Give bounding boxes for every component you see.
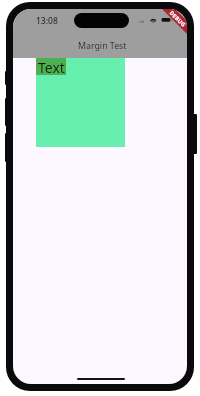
staticText: Text xyxy=(38,58,65,75)
other: Signal, Wi-Fi and battery status xyxy=(138,17,173,27)
staticText: DEBUG xyxy=(168,9,187,28)
staticText: Margin Test xyxy=(78,40,127,52)
button[interactable]: Volume down xyxy=(5,133,8,162)
staticText: 13:08 xyxy=(36,15,58,27)
button[interactable]: Volume up xyxy=(5,98,8,126)
button[interactable]: Power xyxy=(192,114,197,154)
button[interactable]: Silent switch xyxy=(5,71,8,85)
button[interactable]: Text xyxy=(36,58,125,147)
